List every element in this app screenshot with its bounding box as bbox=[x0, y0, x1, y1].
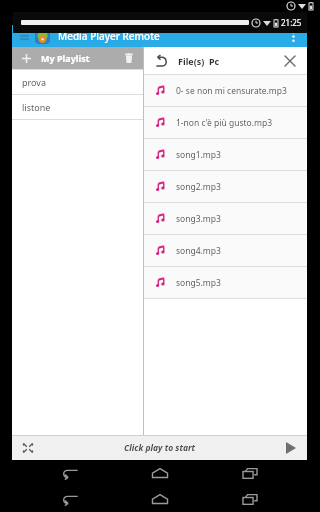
button[interactable]: song1.mp3 bbox=[144, 138, 307, 170]
button[interactable]: song3.mp3 bbox=[144, 202, 307, 234]
button[interactable]: listone bbox=[12, 94, 143, 119]
staticText: song3.mp3 bbox=[176, 213, 221, 225]
button[interactable]: More options bbox=[284, 27, 302, 45]
button[interactable]: Home bbox=[140, 486, 180, 512]
button[interactable]: Close bbox=[281, 52, 299, 70]
button[interactable]: Toggle fullscreen bbox=[18, 438, 38, 458]
button[interactable]: Open navigation drawer bbox=[17, 29, 31, 43]
staticText: 21:25 bbox=[281, 17, 302, 28]
staticText: song2.mp3 bbox=[176, 181, 221, 193]
staticText: Click play to start bbox=[124, 442, 195, 454]
staticText: song4.mp3 bbox=[176, 245, 221, 257]
staticText: prova bbox=[22, 76, 46, 88]
button[interactable]: Delete playlist bbox=[122, 51, 136, 65]
staticText: listone bbox=[22, 101, 51, 113]
button[interactable]: Play bbox=[281, 438, 301, 458]
button[interactable]: Back bbox=[152, 52, 170, 70]
button[interactable]: 1-non c'è più gusto.mp3 bbox=[144, 106, 307, 138]
button[interactable]: Recent apps bbox=[230, 460, 270, 486]
button[interactable]: Back bbox=[50, 486, 90, 512]
staticText: Media Player Remote bbox=[58, 29, 160, 43]
button[interactable]: prova bbox=[12, 69, 143, 94]
button[interactable]: 0- se non mi censurate.mp3 bbox=[144, 74, 307, 106]
button[interactable]: song2.mp3 bbox=[144, 170, 307, 202]
button[interactable]: Home bbox=[140, 460, 180, 486]
button[interactable]: song5.mp3 bbox=[144, 266, 307, 298]
staticText: 0- se non mi censurate.mp3 bbox=[176, 85, 287, 97]
staticText: 1-non c'è più gusto.mp3 bbox=[176, 117, 273, 129]
staticText: song5.mp3 bbox=[176, 277, 221, 289]
staticText: File(s) Pc bbox=[178, 55, 220, 67]
button[interactable]: Add playlist bbox=[19, 51, 33, 65]
button[interactable]: Recent apps bbox=[230, 486, 270, 512]
staticText: My Playlist bbox=[41, 52, 90, 64]
button[interactable]: Back bbox=[50, 460, 90, 486]
staticText: song1.mp3 bbox=[176, 149, 221, 161]
button[interactable]: song4.mp3 bbox=[144, 234, 307, 266]
